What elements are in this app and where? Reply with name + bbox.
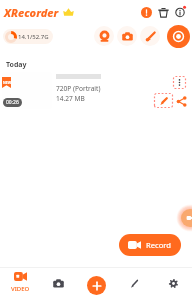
staticText: VIDEO [11,285,30,293]
staticText: 720P (Portrait) [56,84,101,93]
staticText: NEW [3,80,12,85]
button[interactable]: Settings [159,267,187,300]
staticText: 00:26 [6,99,19,106]
button[interactable]: Brush [140,26,160,46]
button[interactable]: Screenshots [44,267,72,300]
button[interactable]: Start recording [167,25,190,48]
button[interactable]: Edit [154,93,173,108]
button[interactable]: NEW [0,70,192,112]
staticText: 14.1/52.7G [18,33,49,41]
button[interactable]: Add [87,276,106,295]
button[interactable]: 14.1/52.7G [3,29,53,44]
staticText: Today [6,60,27,70]
staticText: Record [146,240,171,250]
staticText: 14.27 MB [56,94,85,103]
staticText: XRecorder [4,5,59,20]
button[interactable]: Screenshot [117,26,137,46]
button[interactable]: VIDEO [2,267,39,300]
button[interactable]: Info [172,4,188,20]
button[interactable]: Floating recorder [174,202,192,234]
button[interactable]: Edit [120,267,148,300]
button[interactable]: Facecam [94,26,114,46]
button[interactable]: Delete [155,4,171,20]
button[interactable]: Record [119,234,181,256]
button[interactable]: More options [173,76,186,89]
button[interactable]: Alert [138,4,154,20]
button[interactable]: Share [174,95,188,107]
